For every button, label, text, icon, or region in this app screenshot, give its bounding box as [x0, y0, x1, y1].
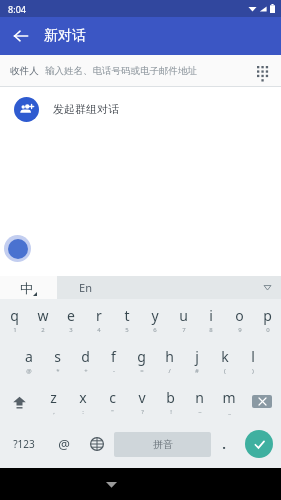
staticText: w: [37, 306, 49, 325]
button[interactable]: a: [14, 340, 43, 381]
staticText: i: [209, 306, 213, 325]
staticText: @: [58, 435, 70, 453]
staticText: l: [251, 347, 255, 366]
staticText: z: [50, 388, 57, 407]
staticText: ?: [141, 408, 144, 416]
button[interactable]: u: [169, 299, 197, 340]
staticText: +: [84, 367, 88, 375]
staticText: 2: [41, 326, 45, 334]
button[interactable]: i: [197, 299, 225, 340]
staticText: r: [96, 306, 102, 325]
staticText: 5: [125, 326, 129, 334]
staticText: j: [195, 347, 199, 366]
button[interactable]: ?123: [0, 422, 48, 466]
button[interactable]: l: [239, 340, 267, 381]
button[interactable]: @: [48, 422, 80, 466]
button[interactable]: r: [85, 299, 113, 340]
staticText: s: [54, 347, 61, 366]
staticText: x: [79, 388, 87, 407]
staticText: q: [10, 306, 19, 325]
button[interactable]: y: [141, 299, 169, 340]
staticText: 输入姓名、电话号码或电子邮件地址: [45, 65, 197, 77]
staticText: :: [82, 408, 84, 416]
staticText: d: [81, 347, 90, 366]
button[interactable]: Shift: [0, 381, 38, 422]
button[interactable]: k: [211, 340, 239, 381]
staticText: a: [25, 347, 33, 366]
button[interactable]: .: [211, 422, 237, 466]
button[interactable]: q: [0, 299, 29, 340]
staticText: h: [165, 347, 174, 366]
staticText: t: [124, 306, 130, 325]
staticText: 拼音: [153, 438, 173, 451]
button[interactable]: o: [225, 299, 253, 340]
button[interactable]: Change language: [80, 422, 114, 466]
staticText: m: [222, 388, 236, 407]
staticText: 3: [69, 326, 73, 334]
staticText: c: [109, 388, 116, 407]
staticText: o: [235, 306, 244, 325]
staticText: 4: [97, 326, 101, 334]
button[interactable]: Hide keyboard: [98, 471, 124, 497]
staticText: ?123: [13, 437, 35, 451]
staticText: v: [138, 388, 146, 407]
staticText: 8: [209, 326, 213, 334]
staticText: 7: [182, 326, 186, 334]
staticText: ~: [198, 408, 202, 416]
staticText: En: [79, 280, 92, 295]
button[interactable]: e: [57, 299, 85, 340]
button[interactable]: j: [183, 340, 211, 381]
button[interactable]: c: [98, 381, 127, 422]
staticText: y: [151, 306, 159, 325]
staticText: (: [224, 367, 226, 375]
button[interactable]: 中: [0, 276, 57, 299]
button[interactable]: v: [127, 381, 156, 422]
staticText: ,: [53, 408, 55, 416]
button[interactable]: n: [185, 381, 214, 422]
staticText: p: [263, 306, 272, 325]
staticText: f: [111, 347, 116, 366]
button[interactable]: x: [68, 381, 98, 422]
staticText: n: [195, 388, 204, 407]
staticText: /: [168, 367, 171, 375]
button[interactable]: En: [57, 276, 281, 299]
staticText: @: [26, 367, 32, 375]
staticText: 新对话: [44, 27, 86, 45]
button[interactable]: h: [155, 340, 183, 381]
staticText: !: [170, 408, 172, 416]
staticText: .: [222, 435, 226, 453]
button[interactable]: 拼音: [114, 432, 211, 457]
button[interactable]: g: [127, 340, 155, 381]
button[interactable]: Dialpad: [249, 58, 275, 84]
button[interactable]: Enter: [237, 422, 281, 466]
button[interactable]: m: [214, 381, 243, 422]
staticText: *: [56, 367, 60, 375]
staticText: 6: [153, 326, 157, 334]
staticText: b: [166, 388, 175, 407]
staticText: 1: [13, 326, 17, 334]
staticText: 中: [20, 280, 33, 296]
staticText: -: [113, 367, 115, 375]
staticText: ": [111, 408, 114, 416]
button[interactable]: s: [43, 340, 71, 381]
button[interactable]: p: [253, 299, 281, 340]
button[interactable]: w: [29, 299, 57, 340]
staticText: 9: [238, 326, 242, 334]
staticText: #: [195, 367, 199, 375]
button[interactable]: t: [113, 299, 141, 340]
button[interactable]: 发起群组对话: [0, 87, 281, 131]
staticText: =: [140, 367, 144, 375]
staticText: ): [252, 367, 254, 375]
staticText: u: [179, 306, 188, 325]
button[interactable]: b: [156, 381, 185, 422]
button[interactable]: Backspace: [243, 381, 281, 422]
staticText: k: [221, 347, 229, 366]
staticText: g: [137, 347, 146, 366]
staticText: 0: [266, 326, 270, 334]
button[interactable]: Back: [6, 21, 36, 51]
staticText: 8:04: [8, 3, 26, 15]
button[interactable]: z: [38, 381, 68, 422]
button[interactable]: f: [99, 340, 127, 381]
staticText: e: [67, 306, 75, 325]
button[interactable]: d: [71, 340, 99, 381]
